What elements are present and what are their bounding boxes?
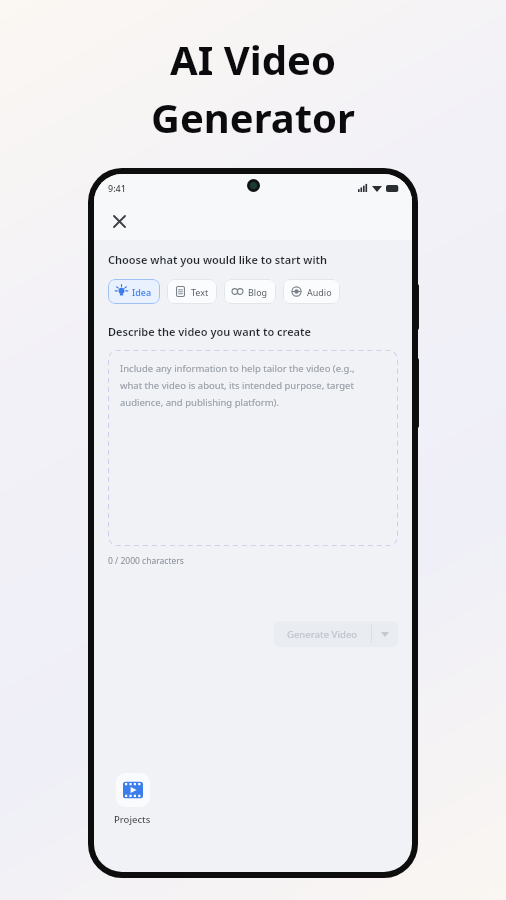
button[interactable]: Include any information to help tailor t… <box>108 350 398 546</box>
staticText: Include any information to help tailor t… <box>120 362 374 409</box>
button[interactable]: Blog <box>224 279 276 304</box>
button[interactable]: Text <box>167 279 217 304</box>
staticText: Generate Video <box>287 628 358 641</box>
staticText: Audio <box>307 286 332 298</box>
staticText: Text <box>191 286 209 298</box>
staticText: Idea <box>132 286 152 298</box>
staticText: Generator <box>151 90 355 144</box>
button[interactable]: Close <box>106 208 132 234</box>
button[interactable]: More options <box>372 621 398 647</box>
staticText: Describe the video you want to create <box>108 324 311 339</box>
staticText: Choose what you would like to start with <box>108 252 327 267</box>
button[interactable]: Projects <box>110 769 155 830</box>
button[interactable]: Idea <box>108 279 160 304</box>
button[interactable]: Audio <box>283 279 340 304</box>
staticText: AI Video <box>170 32 336 86</box>
staticText: Blog <box>248 286 268 298</box>
staticText: 9:41 <box>108 182 126 194</box>
staticText: Projects <box>114 813 151 826</box>
staticText: 0 / 2000 characters <box>108 555 184 567</box>
button[interactable]: Generate Video <box>274 621 398 647</box>
